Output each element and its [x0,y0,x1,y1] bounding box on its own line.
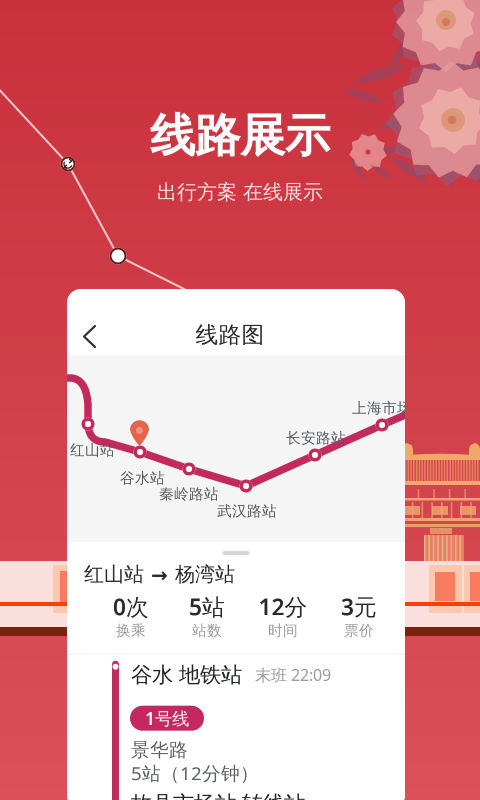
staticText: 线路展示 [150,108,330,164]
staticText: 武汉路站 [217,502,277,520]
staticText: 12分 [258,592,307,622]
button[interactable]: 返回 [71,318,107,354]
staticText: 景华路 [131,739,188,762]
staticText: 0次 [113,592,149,622]
staticText: 票价 [344,622,374,640]
staticText: 线路图 [195,321,264,349]
staticText: 红山站 → 杨湾站 [84,562,235,587]
staticText: 时间 [268,622,298,640]
staticText: 谷水站 [120,469,165,487]
staticText: 红山站 [70,441,115,459]
staticText: 谷水 地铁站 [131,662,242,688]
staticText: 3元 [341,592,377,622]
staticText: 上海市场站 [352,399,427,417]
staticText: 末班 22:09 [255,664,331,685]
staticText: 5站（12分钟） [131,761,259,785]
staticText: 长安路站 [286,429,346,447]
staticText: 秦岭路站 [159,485,219,503]
staticText: 出行方案 在线展示 [157,180,323,204]
staticText: 故县市场站 转线站 [131,791,305,800]
staticText: 1号线 [145,707,189,730]
staticText: 站数 [192,622,222,640]
staticText: 换乘 [116,622,146,640]
staticText: 5站 [189,592,225,622]
